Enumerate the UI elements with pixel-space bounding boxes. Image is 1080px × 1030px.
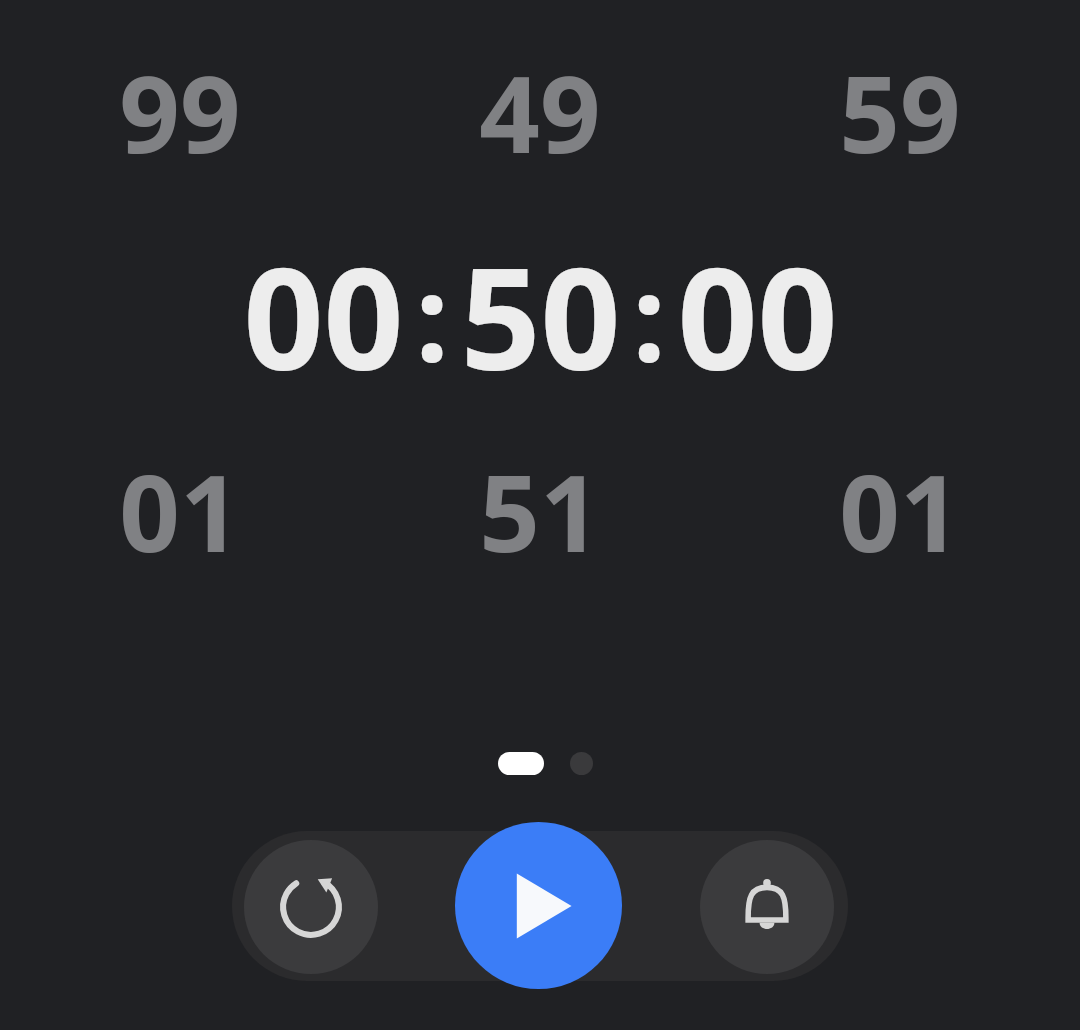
staticText: 99 <box>119 40 241 184</box>
button[interactable]: Start <box>455 822 622 989</box>
staticText: 49 <box>479 40 601 184</box>
staticText: : <box>632 235 666 396</box>
staticText: 50 <box>460 220 621 411</box>
staticText: 00 <box>243 220 404 411</box>
staticText: 01 <box>839 439 961 583</box>
staticText: : <box>415 235 449 396</box>
staticText: 00 <box>677 220 838 411</box>
staticText: 51 <box>479 439 601 583</box>
staticText: 59 <box>839 40 961 184</box>
button[interactable]: Reset <box>244 840 378 974</box>
staticText: 01 <box>119 439 241 583</box>
button[interactable]: Alarm sound <box>700 840 834 974</box>
